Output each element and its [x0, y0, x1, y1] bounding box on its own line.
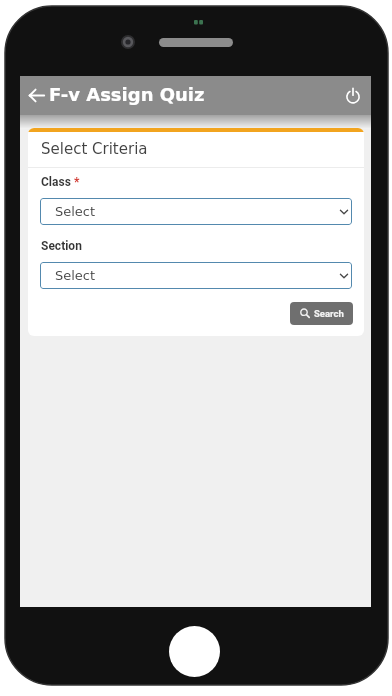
button[interactable] — [29, 88, 45, 103]
button[interactable]: Select — [40, 198, 352, 225]
button[interactable]: Select — [40, 262, 352, 289]
staticText: Select — [55, 204, 96, 219]
staticText: Select Criteria — [41, 140, 148, 157]
button[interactable] — [345, 88, 361, 104]
staticText: Select — [55, 268, 96, 283]
button[interactable] — [169, 626, 220, 677]
staticText: Section — [41, 239, 82, 253]
staticText: F-v Assign Quiz — [49, 84, 205, 105]
staticText: Search — [314, 308, 344, 319]
staticText: * — [71, 175, 80, 189]
button[interactable]: Search — [290, 302, 353, 325]
staticText: Class — [41, 175, 71, 189]
